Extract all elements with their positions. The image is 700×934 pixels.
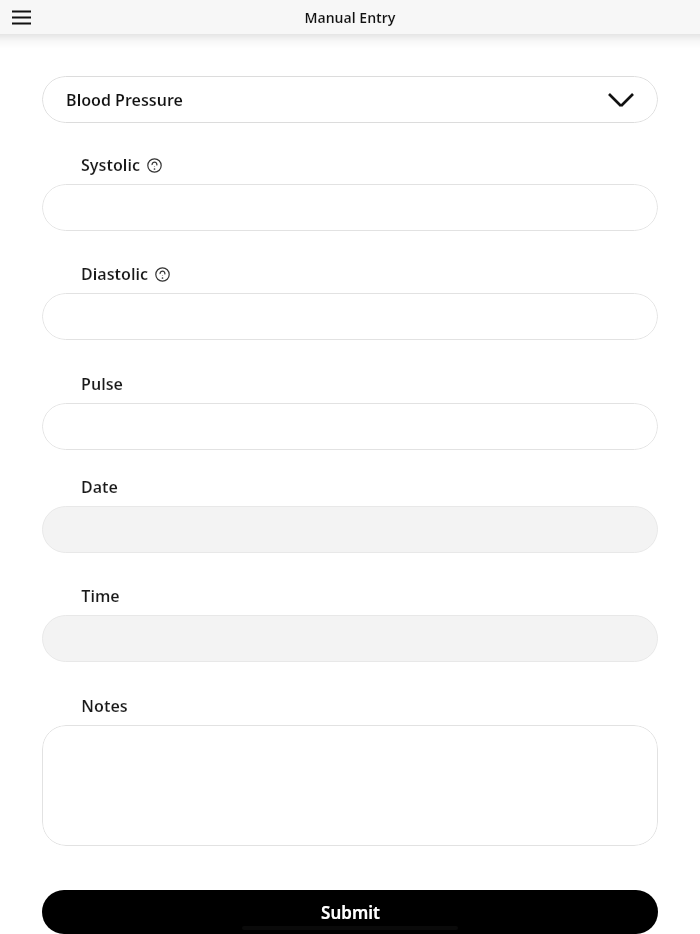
staticText: Notes	[81, 695, 128, 717]
staticText: Time	[81, 585, 120, 607]
button[interactable]: What is Systolic?	[146, 157, 162, 173]
staticText: Manual Entry	[304, 8, 396, 27]
button[interactable]: Systolic input field	[42, 184, 658, 231]
staticText: Submit	[321, 901, 380, 924]
button[interactable]: What is Diastolic?	[154, 266, 170, 282]
button[interactable]: Diastolic input field	[42, 293, 658, 340]
staticText: Blood Pressure	[66, 89, 183, 111]
staticText: Date	[81, 476, 118, 498]
staticText: Pulse	[81, 373, 123, 395]
button[interactable]: Blood Pressure	[42, 76, 658, 123]
staticText: Diastolic	[81, 263, 148, 285]
button[interactable]: Pulse input field	[42, 403, 658, 450]
button[interactable]: Notes input field	[42, 725, 658, 846]
button[interactable]: Submit	[42, 890, 658, 934]
staticText: Systolic	[81, 154, 140, 176]
button[interactable]: Open navigation menu	[6, 2, 36, 32]
